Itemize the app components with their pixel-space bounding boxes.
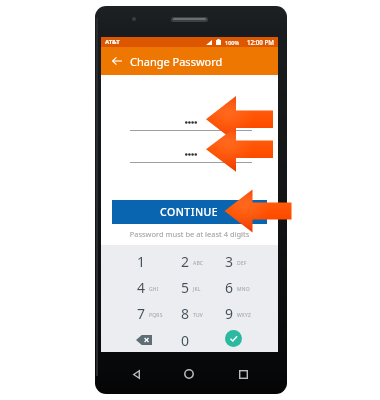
staticText: 6: [225, 278, 234, 297]
button[interactable]: 2: [163, 248, 207, 274]
button[interactable]: Back: [106, 47, 128, 75]
staticText: 12:00 PM: [247, 38, 274, 46]
button[interactable]: Done: [207, 327, 251, 353]
staticText: GHI: [149, 286, 159, 293]
staticText: PQRS: [149, 312, 163, 319]
staticText: Password must be at least 4 digits: [101, 229, 278, 239]
button[interactable]: 1: [119, 248, 163, 274]
button[interactable]: 3: [207, 248, 251, 274]
staticText: Change Password: [130, 54, 223, 69]
staticText: TUV: [193, 312, 204, 319]
button[interactable]: 9: [207, 300, 251, 326]
button[interactable]: 0: [163, 327, 207, 353]
button[interactable]: 6: [207, 274, 251, 300]
staticText: WXYZ: [237, 312, 252, 319]
staticText: CONTINUE: [160, 205, 219, 219]
staticText: ABC: [193, 260, 204, 267]
staticText: 4: [137, 278, 146, 297]
button[interactable]: Recents: [224, 362, 262, 386]
staticText: 7: [137, 304, 146, 323]
staticText: 9: [225, 304, 234, 323]
staticText: DEF: [237, 260, 247, 267]
button[interactable]: Back: [117, 362, 155, 386]
button[interactable]: Backspace: [119, 327, 163, 353]
staticText: MNO: [237, 286, 250, 293]
staticText: AT&T: [105, 38, 120, 46]
staticText: 2: [181, 252, 190, 271]
staticText: 5: [181, 278, 190, 297]
staticText: 100%: [225, 39, 240, 46]
staticText: JKL: [193, 286, 201, 293]
staticText: 0: [181, 331, 190, 350]
button[interactable]: 4: [119, 274, 163, 300]
staticText: 3: [225, 252, 234, 271]
button[interactable]: 8: [163, 300, 207, 326]
button[interactable]: Home: [170, 362, 208, 386]
staticText: 8: [181, 304, 190, 323]
button[interactable]: CONTINUE: [112, 200, 267, 224]
staticText: 1: [137, 252, 146, 271]
button[interactable]: 5: [163, 274, 207, 300]
button[interactable]: 7: [119, 300, 163, 326]
